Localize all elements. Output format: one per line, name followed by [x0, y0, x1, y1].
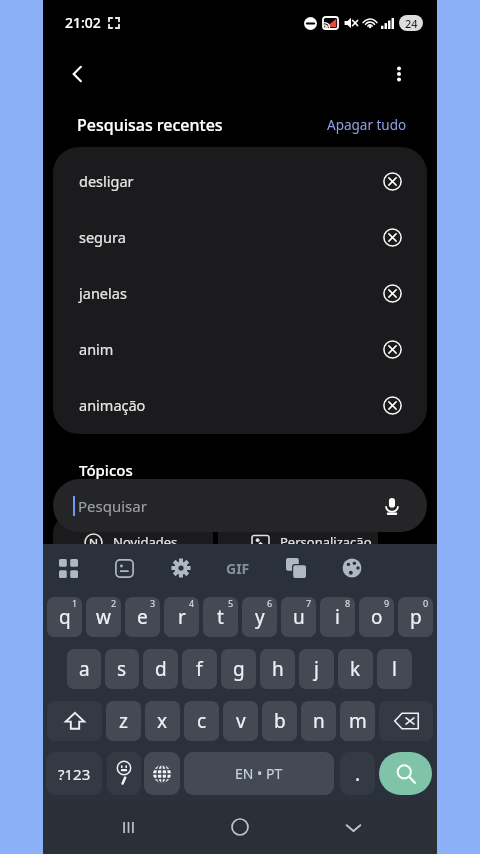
staticText: . [355, 761, 361, 787]
staticText: q [59, 604, 71, 630]
button[interactable]: Remove janelas [375, 276, 409, 310]
staticText: Pesquisas recentes [77, 114, 223, 136]
button[interactable]: Search [379, 752, 432, 795]
staticText: Pesquisar [78, 496, 147, 516]
button[interactable]: o [359, 597, 394, 637]
button[interactable]: k [338, 649, 373, 689]
button[interactable]: b [262, 701, 297, 741]
button[interactable]: Hide keyboard [325, 800, 381, 854]
staticText: g [233, 656, 245, 682]
button[interactable]: l [377, 649, 412, 689]
button[interactable]: Back [56, 52, 100, 96]
staticText: x [157, 708, 168, 734]
staticText: d [155, 656, 167, 682]
staticText: desligar [79, 171, 134, 191]
button[interactable]: q [47, 597, 82, 637]
button[interactable]: i [320, 597, 355, 637]
button[interactable]: a [67, 649, 101, 689]
button[interactable]: w [86, 597, 121, 637]
button[interactable]: Shift [47, 701, 102, 741]
button[interactable]: Personalização [218, 515, 378, 569]
staticText: Novidades [113, 533, 178, 551]
button[interactable]: h [260, 649, 295, 689]
staticText: ?123 [58, 764, 91, 784]
button[interactable]: u [281, 597, 316, 637]
staticText: 21:02 [65, 13, 101, 32]
button[interactable]: n [301, 701, 336, 741]
staticText: u [293, 604, 305, 630]
button[interactable]: Keyboard modes [51, 551, 85, 585]
staticText: m [349, 708, 367, 734]
button[interactable]: Apagar tudo [319, 112, 415, 138]
button[interactable]: EN • PT [184, 752, 334, 795]
button[interactable]: g [221, 649, 256, 689]
staticText: janelas [79, 283, 127, 303]
button[interactable]: Pesquisar [53, 479, 427, 532]
staticText: y [255, 604, 265, 630]
staticText: b [274, 708, 286, 734]
button[interactable]: ?123 [46, 752, 102, 795]
staticText: k [350, 656, 361, 682]
button[interactable]: j [299, 649, 334, 689]
button[interactable]: s [105, 649, 139, 689]
button[interactable]: t [203, 597, 238, 637]
staticText: EN • PT [235, 764, 283, 783]
staticText: t [217, 604, 224, 630]
button[interactable]: Backspace [379, 701, 433, 741]
staticText: f [196, 656, 203, 682]
staticText: Personalização [280, 533, 372, 551]
button[interactable]: d [143, 649, 178, 689]
button[interactable]: animação [53, 377, 427, 433]
staticText: v [236, 708, 246, 734]
staticText: z [119, 708, 128, 734]
button[interactable]: Keyboard settings [164, 551, 198, 585]
staticText: n [313, 708, 325, 734]
staticText: h [272, 656, 284, 682]
staticText: 24 [405, 16, 418, 31]
button[interactable]: e [125, 597, 160, 637]
button[interactable]: Home [212, 800, 268, 854]
button[interactable]: f [182, 649, 217, 689]
button[interactable]: anim [53, 321, 427, 377]
staticText: Apagar tudo [327, 116, 407, 134]
button[interactable]: Stickers [107, 551, 141, 585]
button[interactable]: m [340, 701, 375, 741]
button[interactable]: Remove animação [375, 388, 409, 422]
staticText: s [117, 656, 127, 682]
button[interactable]: Remove desligar [375, 164, 409, 198]
button[interactable]: c [184, 701, 219, 741]
staticText: r [178, 604, 186, 630]
staticText: w [96, 604, 111, 630]
staticText: p [410, 604, 422, 630]
staticText: animação [79, 395, 146, 415]
button[interactable]: y [242, 597, 277, 637]
button[interactable]: Emoji [107, 752, 141, 795]
button[interactable]: p [398, 597, 433, 637]
staticText: i [335, 604, 340, 630]
staticText: Tópicos [79, 460, 133, 480]
staticText: c [197, 708, 207, 734]
staticText: a [79, 656, 90, 682]
staticText: 3 [150, 597, 156, 609]
button[interactable]: Themes [335, 551, 369, 585]
button[interactable]: . [340, 752, 375, 795]
button[interactable]: Recents [100, 800, 156, 854]
staticText: segura [79, 227, 126, 247]
button[interactable]: Remove segura [375, 220, 409, 254]
button[interactable]: More options [377, 52, 421, 96]
button[interactable]: Translate [279, 551, 313, 585]
button[interactable]: Change language [144, 752, 180, 795]
staticText: 7 [306, 597, 312, 609]
button[interactable]: janelas [53, 265, 427, 321]
button[interactable]: x [145, 701, 180, 741]
button[interactable]: r [164, 597, 199, 637]
button[interactable]: z [106, 701, 141, 741]
button[interactable]: v [223, 701, 258, 741]
button[interactable]: GIF [220, 553, 256, 583]
button[interactable]: Remove anim [375, 332, 409, 366]
staticText: 0 [423, 597, 429, 609]
button[interactable]: Novidades [53, 515, 213, 569]
button[interactable]: Voice search [376, 490, 408, 522]
button[interactable]: desligar [53, 153, 427, 209]
button[interactable]: segura [53, 209, 427, 265]
